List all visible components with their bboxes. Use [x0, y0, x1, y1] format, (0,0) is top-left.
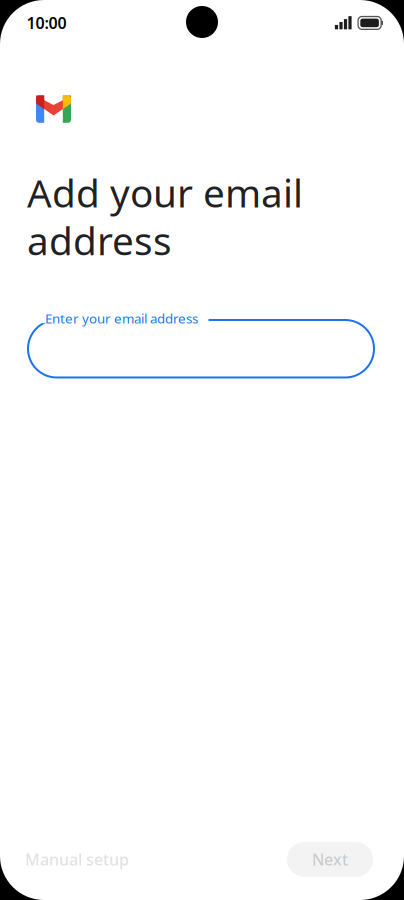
button[interactable]: Next: [287, 842, 373, 877]
staticText: Next: [312, 849, 348, 870]
staticText: Add your email address: [27, 167, 303, 266]
staticText: 10:00: [26, 12, 66, 33]
staticText: Manual setup: [25, 849, 129, 870]
button[interactable]: Manual setup: [17, 838, 137, 881]
staticText: Enter your email address: [45, 309, 198, 327]
